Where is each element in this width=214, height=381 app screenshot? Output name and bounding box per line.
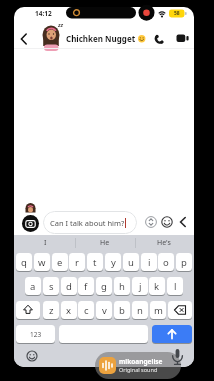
staticText: Can I talk about him? [50,218,125,228]
staticText: j [139,280,142,293]
button[interactable]: 123 [16,325,55,344]
staticText: z [49,304,54,317]
button[interactable]: x [61,301,77,320]
button[interactable]: p [176,253,192,272]
button[interactable]: w [34,253,50,272]
button[interactable]: q [16,253,32,272]
button[interactable] [161,216,173,228]
button[interactable] [26,350,38,362]
button[interactable]: r [69,253,85,272]
button[interactable] [22,215,39,232]
button[interactable]: d [61,277,77,296]
staticText: q [21,256,27,269]
button[interactable]: n [132,301,148,320]
button[interactable]: Chichken Nugget [66,33,146,44]
button[interactable] [152,325,192,344]
staticText: o [163,256,169,269]
button[interactable] [153,32,167,46]
staticText: r [75,256,79,269]
button[interactable] [168,301,192,320]
staticText: k [154,280,160,293]
staticText: I [44,238,47,248]
button[interactable]: t [87,253,103,272]
staticText: 14:12 [35,9,52,18]
button[interactable]: b [114,301,130,320]
button[interactable] [145,216,157,228]
staticText: zz [58,21,64,28]
staticText: i [148,256,151,269]
staticText: w [38,256,46,269]
button[interactable]: e [52,253,68,272]
staticText: c [84,304,89,317]
button[interactable]: j [132,277,148,296]
button[interactable]: v [96,301,112,320]
staticText: s [49,280,54,293]
button[interactable]: a [25,277,41,296]
button[interactable] [176,34,190,44]
staticText: f [84,280,88,293]
button[interactable]: i [141,253,157,272]
staticText: 123 [30,330,42,339]
staticText: t [93,256,97,269]
button[interactable]: f [78,277,94,296]
button[interactable] [17,31,31,47]
staticText: y [111,256,116,269]
button[interactable] [177,215,189,229]
button[interactable]: z [43,301,59,320]
button[interactable]: He [85,235,125,250]
button[interactable]: o [158,253,174,272]
staticText: b [119,304,125,317]
button[interactable]: y [105,253,121,272]
staticText: n [137,304,143,317]
staticText: x [66,304,72,317]
staticText: p [181,256,187,269]
staticText: a [30,280,36,293]
staticText: Chichken Nugget [66,33,136,44]
button[interactable]: h [114,277,130,296]
button[interactable]: I [25,235,65,250]
button[interactable]: m [150,301,166,320]
staticText: e [57,256,63,269]
button[interactable] [59,325,148,344]
button[interactable]: c [78,301,94,320]
button[interactable]: u [123,253,139,272]
staticText: v [102,304,107,317]
staticText: m [154,304,163,317]
staticText: mikoangelise [119,357,163,366]
button[interactable] [16,301,40,320]
staticText: 58 [174,10,180,17]
staticText: l [174,280,177,293]
staticText: d [66,280,72,293]
button[interactable]: He's [144,235,184,250]
staticText: Original sound [119,366,158,373]
staticText: g [101,280,107,293]
staticText: u [128,256,134,269]
staticText: He's [157,238,171,248]
button[interactable]: s [43,277,59,296]
button[interactable]: l [167,277,183,296]
staticText: h [119,280,125,293]
button[interactable]: mikoangelise [95,352,181,379]
button[interactable]: g [96,277,112,296]
button[interactable]: k [149,277,165,296]
button[interactable]: Can I talk about him? [43,211,137,234]
staticText: He [100,238,110,248]
